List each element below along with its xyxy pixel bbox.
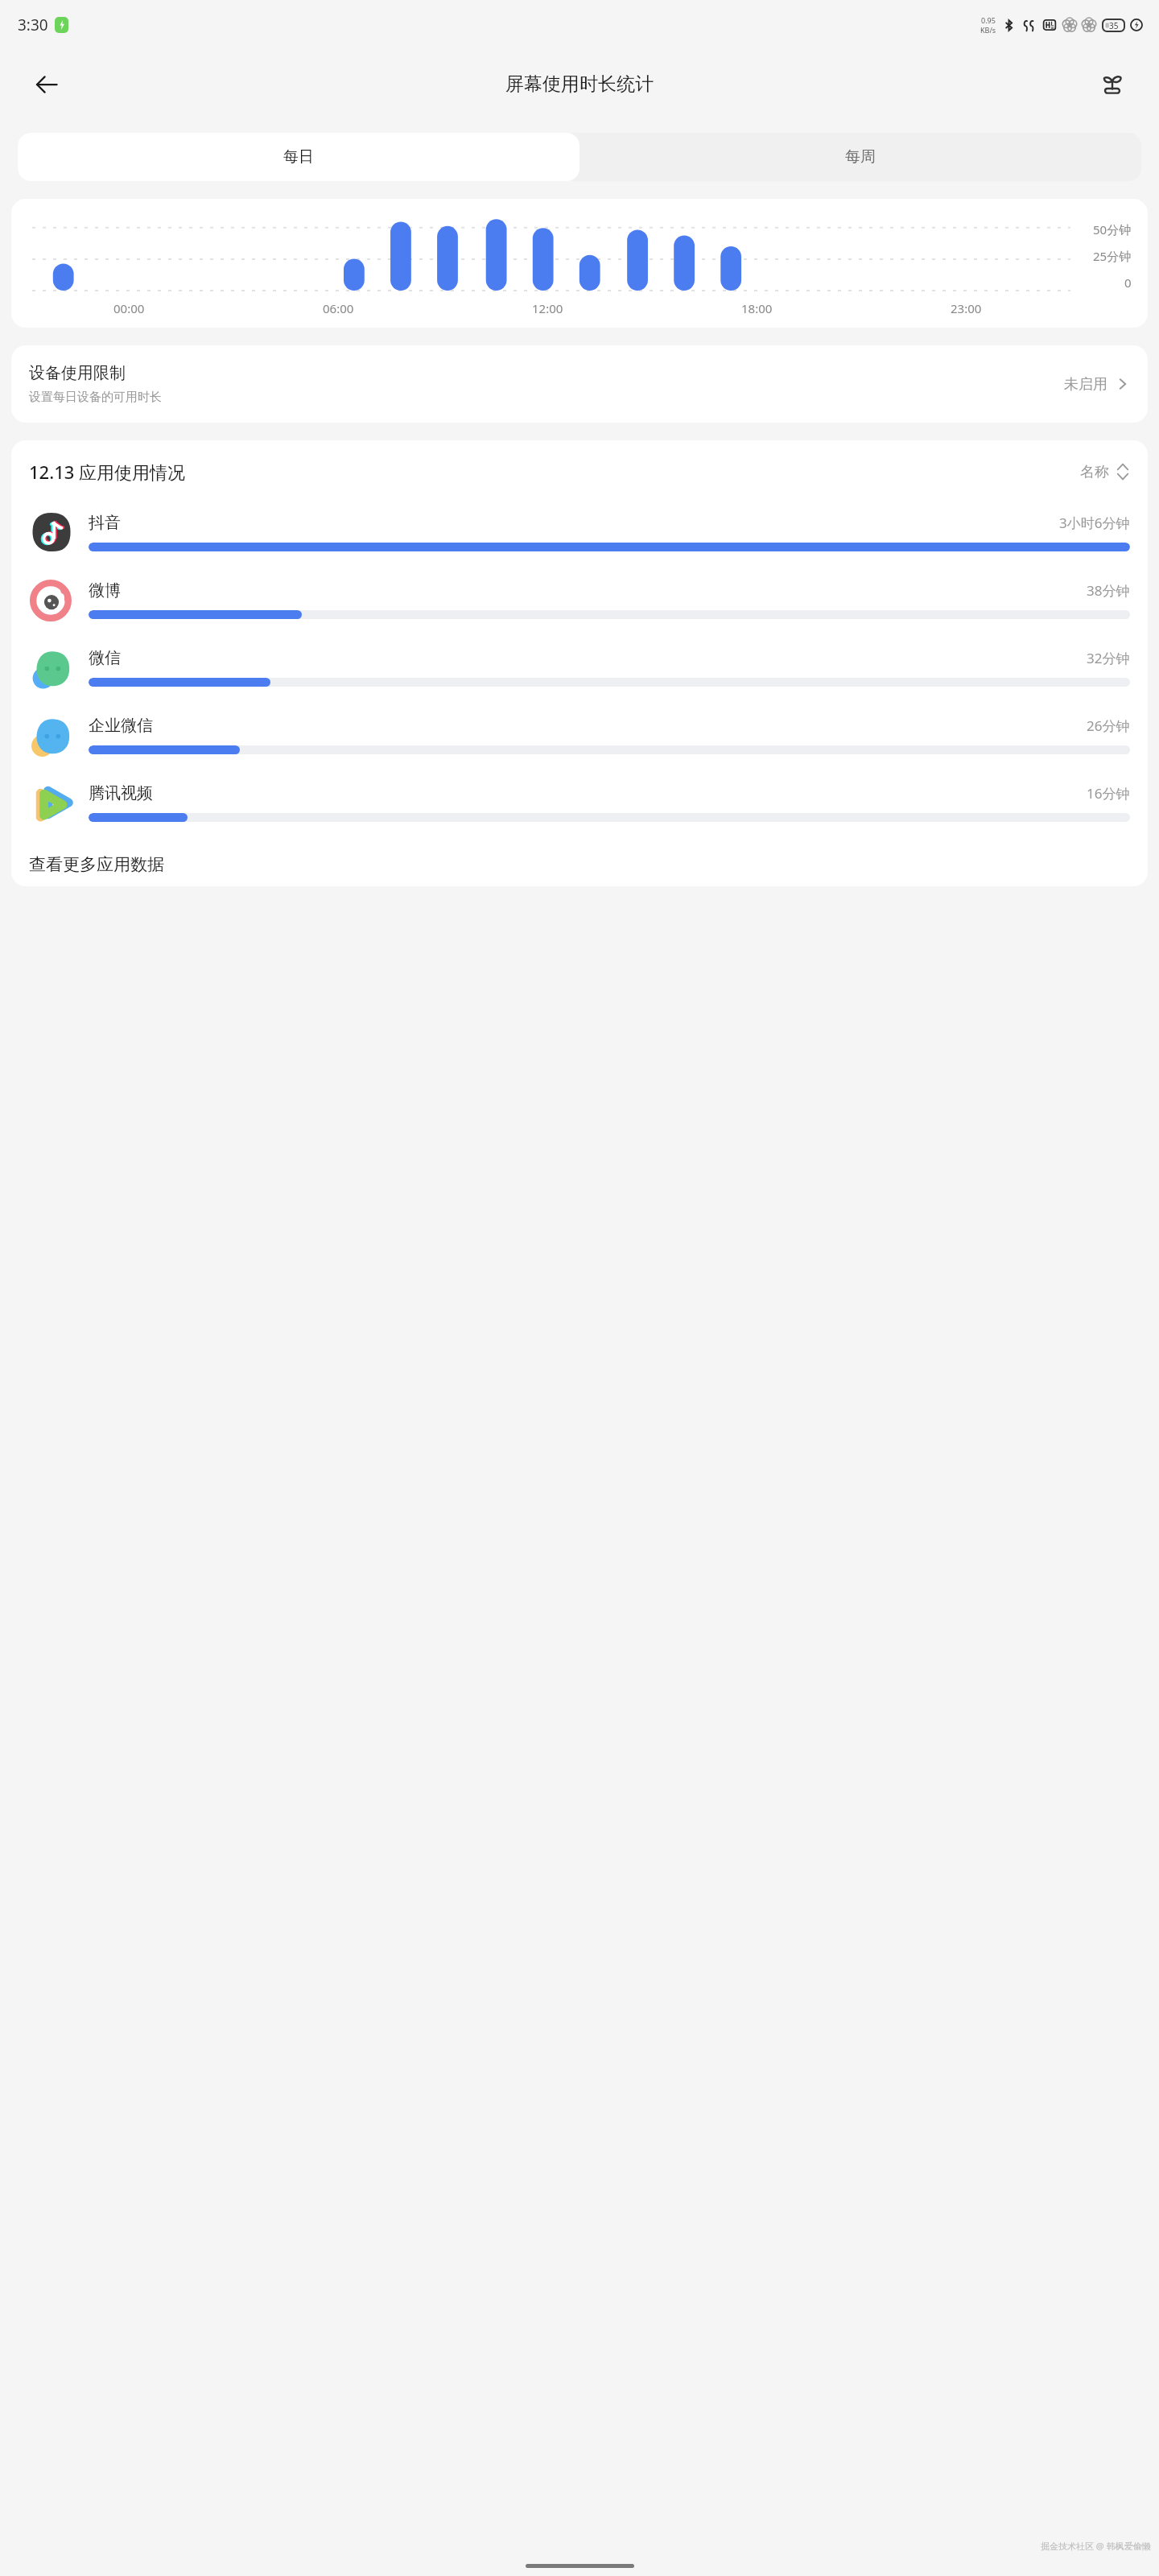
- staticText: 50分钟: [1093, 221, 1132, 237]
- staticText: 企业微信: [89, 716, 1087, 736]
- staticText: 设备使用限制: [29, 363, 126, 383]
- staticText: 26分钟: [1087, 716, 1130, 735]
- staticText: 32分钟: [1087, 649, 1130, 667]
- staticText: 16分钟: [1087, 784, 1130, 803]
- staticText: 06:00: [323, 300, 354, 316]
- staticText: 12:00: [532, 300, 563, 316]
- button[interactable]: Focus mode: [1090, 62, 1135, 107]
- staticText: 掘金技术社区 @ 韩枫爱偷懒: [1041, 2540, 1151, 2552]
- staticText: 35: [1109, 20, 1119, 31]
- button[interactable]: 设备使用限制: [11, 345, 1148, 423]
- button[interactable]: 腾讯视频: [11, 769, 1148, 836]
- staticText: 3:30: [18, 14, 48, 35]
- button[interactable]: 每周: [579, 133, 1141, 181]
- staticText: 微信: [89, 648, 1087, 668]
- staticText: 微博: [89, 580, 1087, 601]
- staticText: 18:00: [741, 300, 773, 316]
- staticText: 设置每日设备的可用时长: [29, 390, 162, 405]
- staticText: KB/s: [980, 25, 996, 35]
- staticText: 00:00: [113, 300, 145, 316]
- staticText: 23:00: [951, 300, 982, 316]
- staticText: 每日: [283, 147, 314, 167]
- staticText: 未启用: [1064, 375, 1107, 394]
- staticText: 0.95: [981, 15, 996, 25]
- button[interactable]: 企业微信: [11, 701, 1148, 769]
- staticText: 腾讯视频: [89, 783, 1087, 803]
- staticText: 3小时6分钟: [1059, 514, 1130, 532]
- staticText: 名称: [1080, 463, 1109, 481]
- staticText: 抖音: [89, 513, 1059, 533]
- staticText: 38分钟: [1087, 581, 1130, 600]
- staticText: 屏幕使用时长统计: [505, 72, 654, 96]
- button[interactable]: 每日: [18, 133, 579, 181]
- staticText: 12.13 应用使用情况: [29, 460, 1080, 484]
- button[interactable]: Back: [24, 62, 69, 107]
- button[interactable]: 查看更多应用数据: [11, 843, 1148, 886]
- staticText: 0: [1124, 275, 1132, 291]
- button[interactable]: 抖音: [11, 498, 1148, 566]
- staticText: 25分钟: [1093, 248, 1132, 264]
- staticText: 每周: [845, 147, 876, 167]
- staticText: 查看更多应用数据: [29, 854, 164, 875]
- button[interactable]: 微信: [11, 634, 1148, 701]
- button[interactable]: 微博: [11, 566, 1148, 634]
- button[interactable]: 名称: [1080, 461, 1130, 482]
